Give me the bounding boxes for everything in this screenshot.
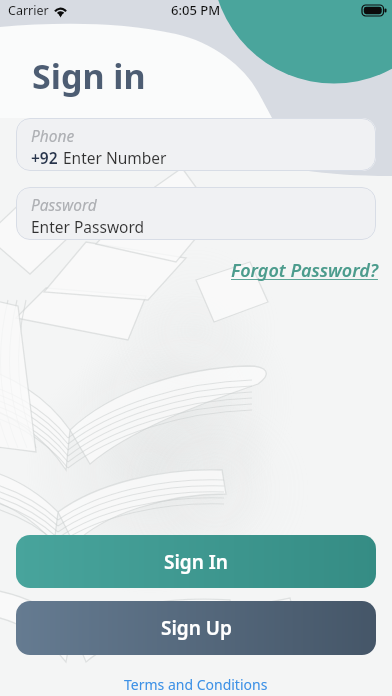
button[interactable]: Sign In: [16, 535, 376, 588]
button[interactable]: Forgot Password?: [223, 255, 392, 286]
staticText: Sign in: [32, 53, 146, 99]
staticText: Phone: [31, 125, 75, 146]
staticText: Terms and Conditions: [124, 675, 268, 694]
button[interactable]: Sign Up: [16, 601, 376, 655]
staticText: 6:05 PM: [171, 1, 221, 19]
button[interactable]: Password: [16, 187, 376, 240]
staticText: Sign Up: [161, 615, 232, 641]
staticText: +92: [31, 147, 58, 168]
button[interactable]: Phone: [16, 118, 376, 171]
staticText: Sign In: [164, 549, 228, 575]
staticText: Forgot Password?: [231, 258, 378, 283]
staticText: Password: [31, 194, 97, 215]
button[interactable]: Terms and Conditions: [114, 672, 278, 696]
staticText: Carrier: [8, 2, 49, 19]
staticText: Enter Password: [31, 216, 145, 237]
staticText: Enter Number: [63, 147, 167, 168]
